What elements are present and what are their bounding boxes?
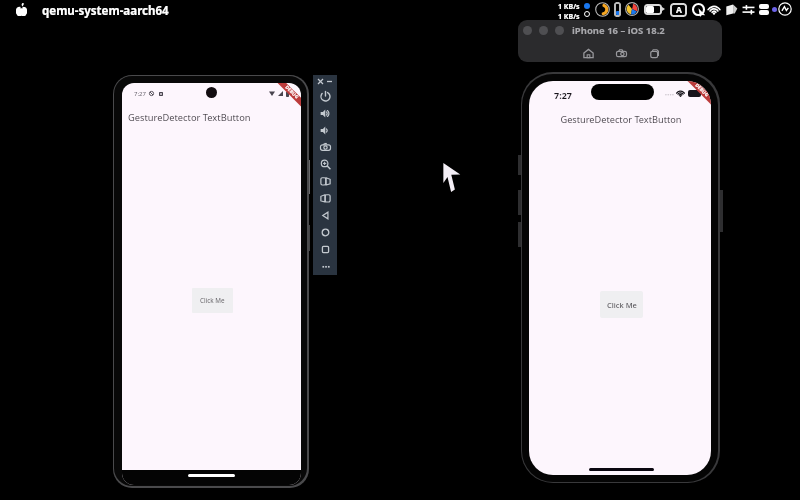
staticText: 7:27 <box>134 90 146 98</box>
button[interactable]: Back <box>313 207 337 224</box>
button[interactable]: Click Me <box>192 288 233 313</box>
button[interactable]: Fold <box>313 173 337 190</box>
button[interactable]: Home indicator <box>589 468 654 471</box>
button[interactable]: Home <box>582 47 595 60</box>
staticText: GestureDetector TextButton <box>128 111 251 124</box>
button[interactable]: Home <box>313 224 337 241</box>
button[interactable]: qemu-system-aarch64 <box>42 3 169 19</box>
staticText: Click Me <box>607 300 637 310</box>
button[interactable]: Zoom <box>313 156 337 173</box>
button[interactable]: Screenshot <box>615 47 628 60</box>
button[interactable]: Click Me <box>600 291 643 318</box>
button[interactable]: Home <box>188 474 235 477</box>
button[interactable]: Screenshot <box>313 139 337 156</box>
button[interactable]: More <box>313 258 337 275</box>
button[interactable]: Power <box>313 88 337 105</box>
staticText: iPhone 16 – iOS 18.2 <box>572 24 665 37</box>
button[interactable]: Window control <box>555 26 564 35</box>
staticText: 1 KB/s <box>558 2 580 12</box>
staticText: GestureDetector TextButton <box>560 113 682 126</box>
staticText: Click Me <box>200 296 225 305</box>
button[interactable]: Volume down <box>313 122 337 139</box>
staticText: DEBUG <box>284 84 301 100</box>
button[interactable]: Window control <box>523 26 532 35</box>
staticText: 1 KB/s <box>558 12 580 21</box>
staticText: A <box>676 4 682 16</box>
button[interactable]: Unfold <box>313 190 337 207</box>
button[interactable]: Close <box>317 78 324 85</box>
button[interactable]: Window control <box>539 26 548 35</box>
button[interactable]: Volume up <box>313 105 337 122</box>
staticText: DEBUG <box>694 82 711 98</box>
staticText: 7:27 <box>554 89 572 101</box>
button[interactable]: Minimize <box>326 78 333 85</box>
button[interactable]: Record <box>648 47 661 60</box>
button[interactable]: Overview <box>313 241 337 258</box>
